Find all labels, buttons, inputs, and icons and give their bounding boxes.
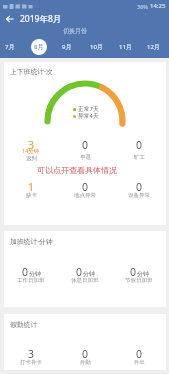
- staticText: 7月: [5, 43, 15, 51]
- staticText: 分钟: [137, 270, 149, 278]
- staticText: 12月: [147, 43, 160, 51]
- button[interactable]: 11月: [117, 39, 133, 55]
- staticText: 分钟: [29, 270, 41, 278]
- staticText: 0: [82, 138, 89, 152]
- staticText: 0: [82, 347, 89, 361]
- button[interactable]: 7月: [2, 39, 18, 55]
- staticText: 切换月份: [63, 27, 87, 35]
- staticText: 设备异常: [128, 192, 150, 199]
- staticText: 缺卡: [26, 192, 37, 199]
- button[interactable]: 0: [4, 265, 58, 290]
- staticText: 正常7天: [78, 105, 99, 113]
- staticText: 0: [136, 180, 143, 194]
- button[interactable]: 3: [4, 347, 58, 372]
- staticText: 加班统计·分钟: [10, 237, 53, 246]
- staticText: 14分钟: [22, 147, 40, 155]
- staticText: 3: [28, 138, 35, 152]
- button[interactable]: 12月: [145, 39, 161, 55]
- button[interactable]: Back: [0, 12, 20, 26]
- button[interactable]: 0: [58, 347, 112, 372]
- button[interactable]: 8月: [31, 39, 47, 55]
- staticText: 14:25: [150, 2, 166, 10]
- staticText: 打卡补卡: [20, 359, 42, 366]
- staticText: 1: [28, 180, 35, 194]
- button[interactable]: 9月: [59, 39, 75, 55]
- staticText: 外出: [134, 359, 145, 366]
- button[interactable]: 0: [58, 265, 112, 290]
- button[interactable]: 0: [112, 138, 166, 167]
- staticText: 异常4天: [78, 112, 99, 120]
- button[interactable]: 1: [4, 180, 58, 205]
- button[interactable]: 0: [58, 180, 112, 205]
- staticText: 工作日加班: [17, 277, 45, 284]
- staticText: 旷工: [134, 154, 145, 161]
- button[interactable]: 10月: [88, 39, 104, 55]
- staticText: 36%: [137, 3, 148, 10]
- staticText: 2019年8月: [20, 13, 62, 25]
- staticText: 可以点开查看具体情况: [37, 165, 117, 175]
- button[interactable]: 0: [58, 138, 112, 167]
- button[interactable]: 0: [112, 347, 166, 372]
- staticText: 0: [136, 138, 143, 152]
- staticText: 分钟: [83, 270, 95, 278]
- staticText: 8月: [34, 43, 44, 51]
- staticText: 0: [130, 265, 137, 279]
- staticText: 0: [22, 265, 29, 279]
- staticText: 11月: [119, 43, 132, 51]
- staticText: 外勤: [80, 359, 91, 366]
- staticText: 假勤统计: [10, 320, 38, 329]
- staticText: 早退: [80, 154, 91, 161]
- button[interactable]: 0: [112, 265, 166, 290]
- button[interactable]: 3: [4, 138, 58, 167]
- staticText: 3: [28, 347, 35, 361]
- staticText: 上下班统计·次: [10, 67, 53, 76]
- staticText: 休息日加班: [71, 277, 99, 284]
- staticText: 节假日加班: [125, 277, 153, 284]
- staticText: 0: [76, 265, 83, 279]
- staticText: 地点异常: [74, 192, 96, 199]
- staticText: 0: [82, 180, 89, 194]
- button[interactable]: 0: [112, 180, 166, 205]
- staticText: 迟到: [26, 155, 37, 162]
- staticText: 9月: [62, 43, 72, 51]
- staticText: 0: [136, 347, 143, 361]
- staticText: 10月: [90, 43, 103, 51]
